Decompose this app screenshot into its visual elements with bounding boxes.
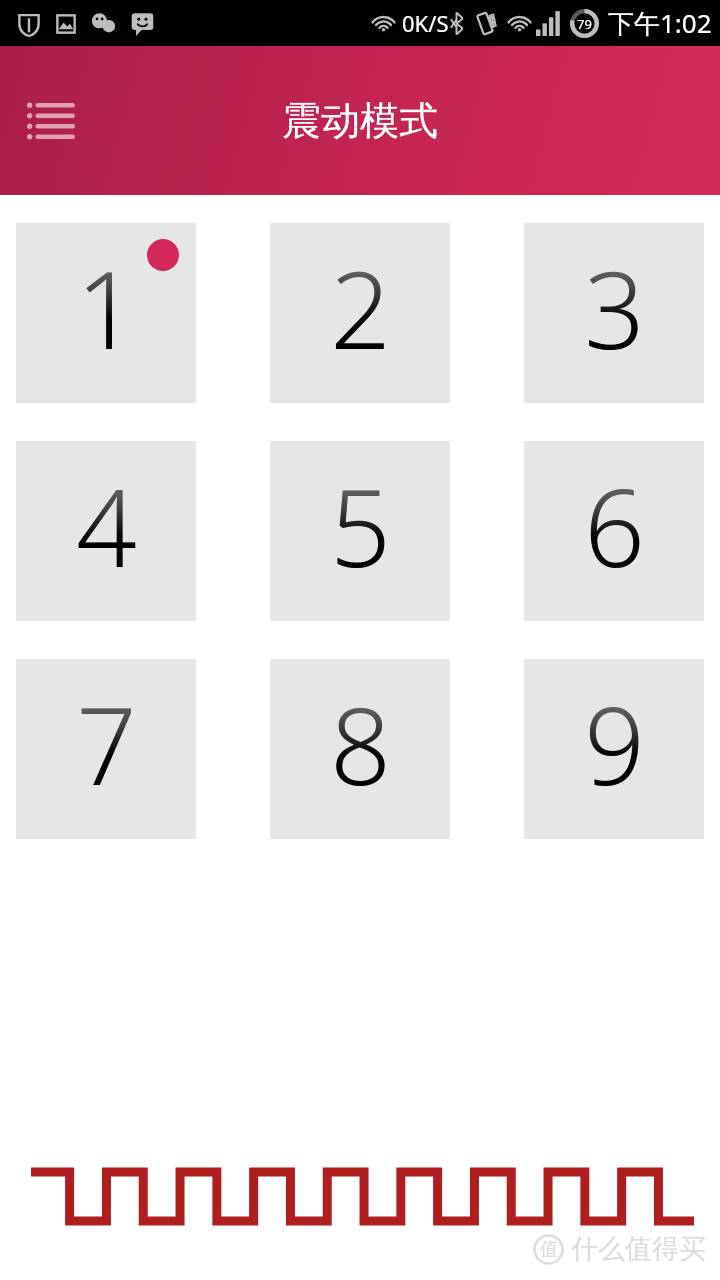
staticText: 2 [330,236,391,380]
staticText: 下午1:02 [608,5,712,41]
button[interactable]: 6 [524,441,704,621]
staticText: 4 [76,454,137,598]
staticText: 5 [330,454,391,598]
staticText: 7 [76,672,137,816]
staticText: 3 [584,236,645,380]
staticText: 79 [577,15,592,33]
button[interactable]: Menu [20,90,82,152]
staticText: 6 [584,454,645,598]
staticText: 震动模式 [282,96,438,145]
button[interactable]: 8 [270,659,450,839]
staticText: 值 [540,1238,558,1261]
button[interactable]: 1 [16,223,196,403]
button[interactable]: 7 [16,659,196,839]
button[interactable]: 5 [270,441,450,621]
staticText: 9 [584,672,645,816]
staticText: 8 [330,672,391,816]
staticText: 0K/S [402,8,449,38]
button[interactable]: 2 [270,223,450,403]
staticText: 1 [76,236,137,380]
button[interactable]: 3 [524,223,704,403]
button[interactable]: 9 [524,659,704,839]
staticText: 什么值得买 [571,1232,706,1266]
button[interactable]: 4 [16,441,196,621]
